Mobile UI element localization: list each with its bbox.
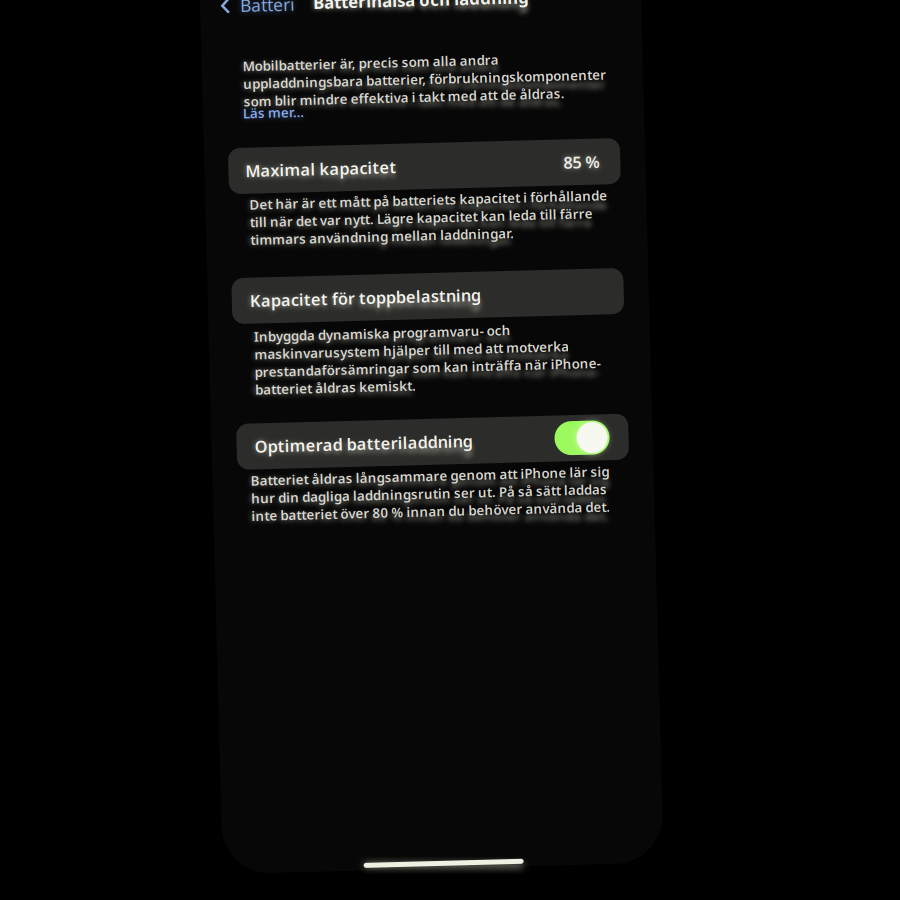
staticText: Mobilbatterier är, precis som alla andra	[248, 52, 504, 70]
staticText: Kapacitet för toppbelastning	[249, 284, 480, 307]
staticText: hur din dagliga laddningsrutin ser ut. P…	[245, 484, 601, 502]
staticText: Det här är ett mått på batteriets kapaci…	[251, 190, 609, 208]
staticText: som blir mindre effektiva i takt med att…	[248, 87, 569, 105]
staticText: Inbyggda dynamiska programvaru- och	[252, 322, 509, 341]
staticText: Batterihälsa och laddning	[320, 0, 536, 10]
staticText: Maximal kapacitet	[248, 154, 399, 177]
button[interactable]: Läs mer…	[247, 99, 367, 117]
staticText: maskinvarusystem hjälper till med att mo…	[252, 340, 567, 358]
button[interactable]: Maximal kapacitet	[231, 142, 623, 188]
button[interactable]: Batteri	[221, 0, 307, 17]
button[interactable]: Optimerad batteriladdning	[232, 418, 624, 464]
button[interactable]: Kapacitet för toppbelastning	[231, 272, 623, 318]
staticText: 85 %	[566, 154, 602, 177]
staticText: Batteriet åldras långsammare genom att i…	[245, 466, 604, 484]
staticText: Läs mer…	[247, 99, 308, 117]
staticText: batteriet åldras kemiskt.	[252, 375, 413, 394]
staticText: Batteri	[247, 0, 301, 12]
staticText: Optimerad batteriladdning	[250, 430, 468, 452]
staticText: till när det var nytt. Lägre kapacitet k…	[251, 208, 594, 226]
staticText: inte batteriet över 80 % innan du behöve…	[245, 502, 604, 520]
staticText: uppladdningsbara batterier, förbruknings…	[248, 69, 611, 88]
staticText: timmars användning mellan laddningar.	[251, 226, 515, 244]
staticText: prestandaförsämringar som kan inträffa n…	[252, 358, 598, 376]
